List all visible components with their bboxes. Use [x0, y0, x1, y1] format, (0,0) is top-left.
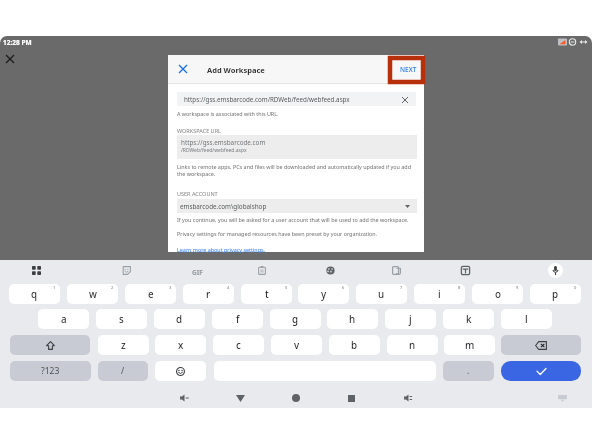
- button[interactable]: g: [270, 309, 321, 329]
- staticText: p: [552, 288, 559, 301]
- button[interactable]: k: [443, 309, 494, 329]
- staticText: ?123: [41, 365, 60, 377]
- button[interactable]: p: [530, 284, 581, 304]
- staticText: w: [89, 288, 97, 301]
- staticText: 12:28 PM: [3, 38, 32, 47]
- staticText: e: [148, 288, 154, 301]
- button[interactable]: v: [271, 335, 322, 355]
- button[interactable]: j: [385, 309, 436, 329]
- staticText: a: [61, 313, 67, 326]
- button[interactable]: f: [212, 309, 263, 329]
- button[interactable]: Slash: [98, 361, 148, 381]
- button[interactable]: d: [154, 309, 205, 329]
- staticText: m: [465, 339, 475, 352]
- staticText: x: [178, 339, 184, 352]
- staticText: r: [206, 288, 211, 301]
- button[interactable]: Close: [3, 52, 16, 65]
- staticText: 8: [458, 285, 461, 290]
- button[interactable]: Back: [231, 389, 249, 407]
- staticText: 7: [400, 285, 403, 290]
- button[interactable]: Switch keyboard: [553, 389, 571, 407]
- button[interactable]: Voice input: [548, 263, 563, 278]
- button[interactable]: Home: [287, 389, 305, 407]
- button[interactable]: r: [183, 284, 234, 304]
- staticText: If you continue, you will be asked for a…: [177, 216, 409, 223]
- button[interactable]: Volume down: [175, 389, 193, 407]
- button[interactable]: Keyboard layout: [457, 262, 473, 278]
- staticText: q: [31, 288, 38, 301]
- staticText: z: [121, 339, 126, 352]
- staticText: https://gss.emsbarcode.com/RDWeb/feed/we…: [184, 95, 350, 104]
- staticText: WORKSPACE URL: [177, 127, 221, 134]
- button[interactable]: a: [38, 309, 89, 329]
- staticText: v: [294, 339, 300, 352]
- staticText: y: [321, 288, 327, 301]
- staticText: emsbarcode.com\globalshop: [180, 202, 267, 211]
- button[interactable]: z: [98, 335, 149, 355]
- staticText: o: [495, 288, 501, 301]
- staticText: s: [119, 313, 124, 326]
- button[interactable]: Emoji: [155, 361, 206, 381]
- staticText: k: [466, 313, 472, 326]
- staticText: l: [525, 313, 528, 326]
- staticText: g: [292, 313, 299, 326]
- button[interactable]: n: [387, 335, 438, 355]
- staticText: USER ACCOUNT: [177, 190, 218, 197]
- staticText: A workspace is associated with this URL.: [177, 110, 279, 117]
- button[interactable]: b: [329, 335, 380, 355]
- button[interactable]: Symbols: [10, 361, 91, 381]
- button[interactable]: y: [298, 284, 349, 304]
- button[interactable]: NEXT: [396, 62, 420, 76]
- button[interactable]: emsbarcode.com\globalshop: [177, 199, 417, 213]
- staticText: 4: [227, 285, 230, 290]
- button[interactable]: Toolbar: [28, 262, 44, 278]
- staticText: h: [349, 313, 356, 326]
- button[interactable]: h: [327, 309, 378, 329]
- button[interactable]: l: [501, 309, 552, 329]
- staticText: GIF: [192, 268, 203, 277]
- button[interactable]: Learn more about privacy settings.: [177, 246, 266, 253]
- button[interactable]: c: [213, 335, 264, 355]
- button[interactable]: Stickers: [118, 262, 134, 278]
- button[interactable]: Enter: [501, 361, 581, 381]
- staticText: Add Workspace: [207, 65, 265, 75]
- staticText: d: [176, 313, 183, 326]
- button[interactable]: s: [96, 309, 147, 329]
- staticText: 5: [285, 285, 288, 290]
- button[interactable]: Clipboard: [254, 262, 270, 278]
- button[interactable]: Volume up: [399, 389, 417, 407]
- staticText: /RDWeb/feed/webfeed.aspx: [181, 147, 247, 154]
- staticText: 2: [111, 285, 114, 290]
- button[interactable]: Clear text: [399, 94, 410, 105]
- staticText: 6: [342, 285, 345, 290]
- button[interactable]: Translate: [388, 262, 404, 278]
- staticText: 3: [169, 285, 172, 290]
- button[interactable]: Recents: [342, 389, 360, 407]
- button[interactable]: t: [241, 284, 292, 304]
- staticText: .: [467, 365, 470, 377]
- button[interactable]: Themes: [322, 262, 338, 278]
- button[interactable]: Shift: [10, 335, 90, 355]
- staticText: 0: [574, 285, 577, 290]
- button[interactable]: o: [472, 284, 523, 304]
- staticText: u: [378, 288, 385, 301]
- button[interactable]: i: [414, 284, 465, 304]
- button[interactable]: x: [155, 335, 206, 355]
- staticText: /: [121, 365, 125, 377]
- button[interactable]: Close: [175, 61, 190, 76]
- button[interactable]: Period: [443, 361, 494, 381]
- staticText: https://gss.emsbarcode.com: [181, 138, 266, 147]
- button[interactable]: Backspace: [501, 335, 581, 355]
- button[interactable]: q: [9, 284, 60, 304]
- staticText: i: [438, 288, 441, 301]
- button[interactable]: w: [67, 284, 118, 304]
- staticText: Privacy settings for managed resources h…: [177, 230, 378, 237]
- button[interactable]: e: [125, 284, 176, 304]
- staticText: 1: [53, 285, 56, 290]
- staticText: n: [409, 339, 416, 352]
- button[interactable]: m: [444, 335, 495, 355]
- button[interactable]: GIF: [185, 267, 209, 278]
- button[interactable]: u: [356, 284, 407, 304]
- staticText: f: [236, 313, 240, 326]
